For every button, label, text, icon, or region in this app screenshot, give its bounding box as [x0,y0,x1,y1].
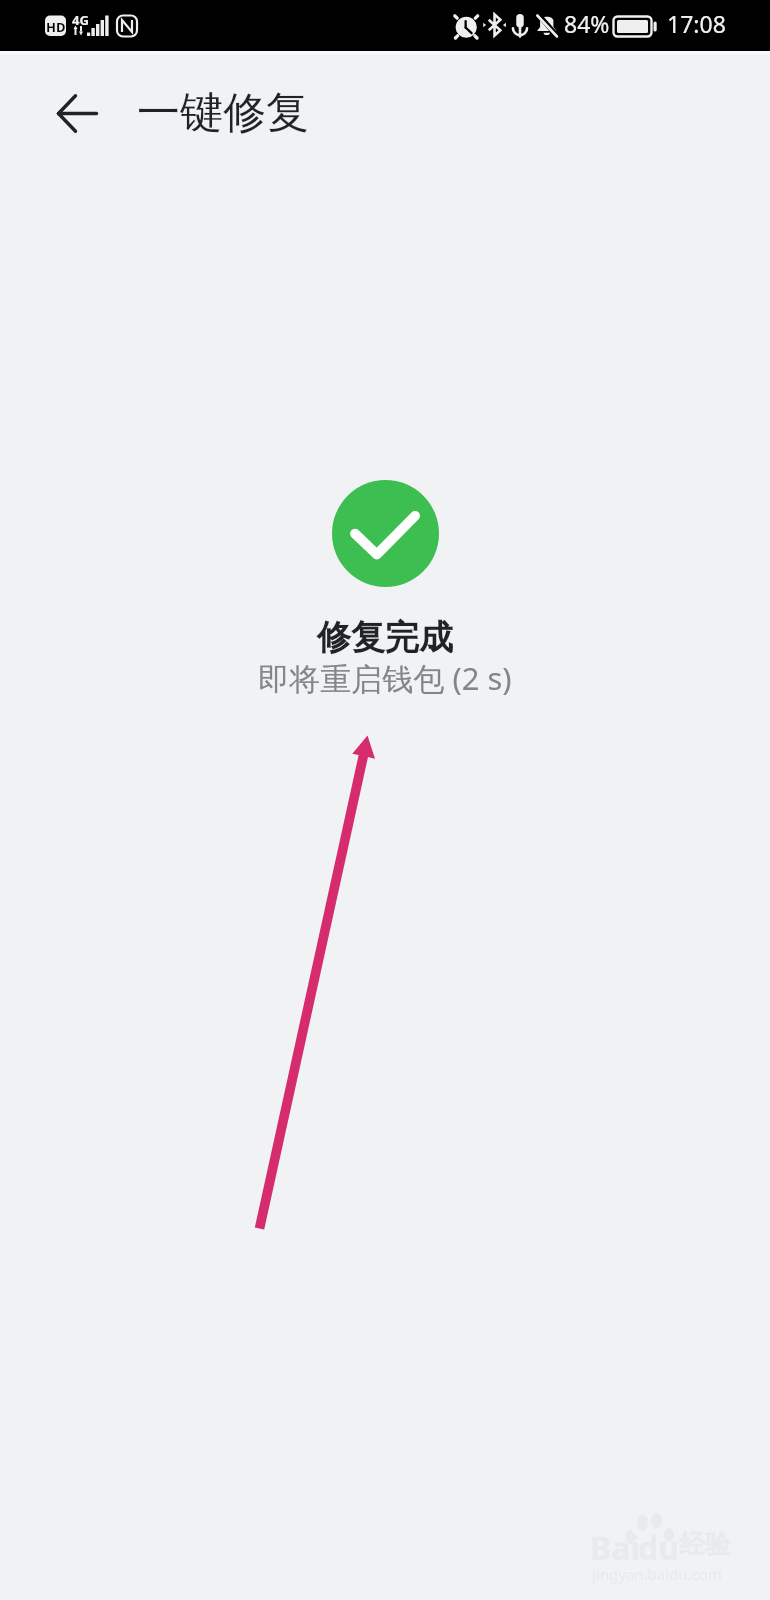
staticText: 84% [564,8,610,39]
staticText: HD [46,18,66,36]
button[interactable]: Back [38,73,116,151]
staticText: 一键修复 [137,86,309,140]
staticText: 经验 [679,1528,731,1561]
staticText: 17:08 [667,8,726,39]
staticText: 修复完成 [0,616,770,659]
staticText: 4G [72,11,89,29]
staticText: du [638,1526,680,1570]
staticText: Bai [590,1526,641,1570]
staticText: 即将重启钱包 (2 s) [0,657,770,699]
